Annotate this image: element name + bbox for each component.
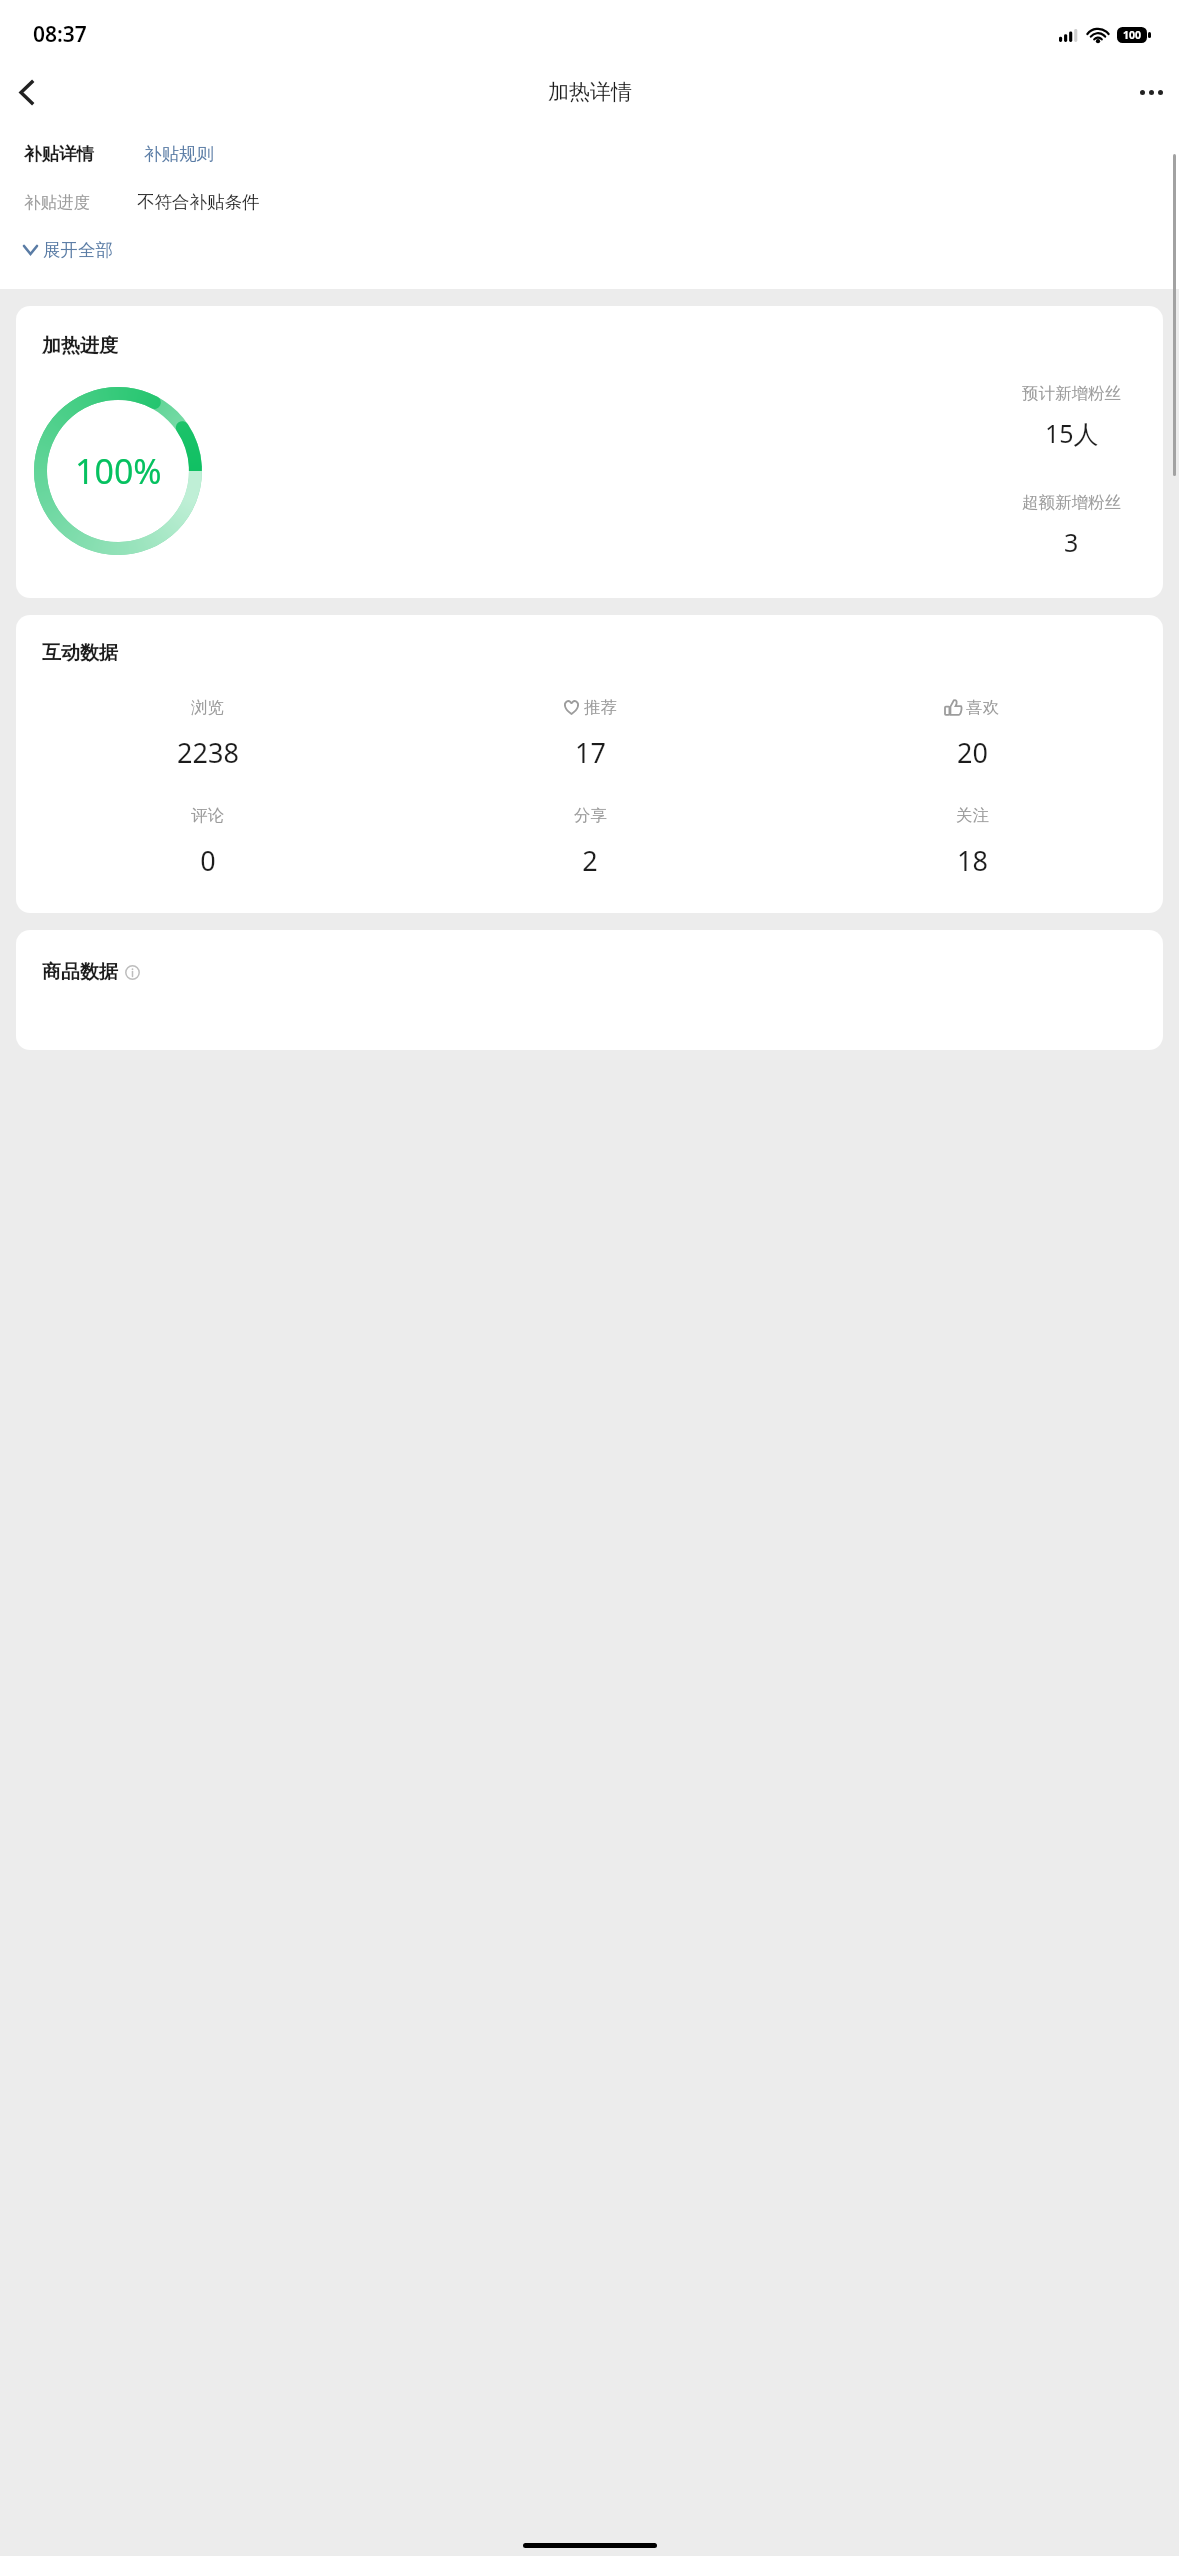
staticText: 不符合补贴条件 — [137, 191, 260, 213]
button[interactable]: 展开全部 — [24, 239, 113, 261]
button[interactable]: 喜欢 — [781, 697, 1163, 771]
staticText: 17 — [575, 734, 606, 771]
button[interactable]: 推荐 — [399, 697, 781, 771]
staticText: 08:37 — [33, 20, 87, 49]
staticText: 补贴进度 — [24, 192, 90, 213]
staticText: 互动数据 — [42, 641, 118, 665]
staticText: 0 — [200, 842, 216, 879]
staticText: 超额新增粉丝 — [1022, 492, 1121, 513]
staticText: 15人 — [1045, 416, 1099, 450]
staticText: 关注 — [956, 805, 989, 826]
staticText: 加热详情 — [548, 79, 632, 105]
staticText: 推荐 — [584, 697, 617, 718]
button[interactable]: 评论 — [16, 805, 399, 879]
staticText: 20 — [957, 734, 988, 771]
staticText: 评论 — [191, 805, 224, 826]
staticText: 100 — [1123, 28, 1142, 42]
staticText: 加热进度 — [42, 334, 118, 358]
button[interactable]: 浏览 — [16, 697, 399, 771]
staticText: 3 — [1064, 525, 1079, 559]
button[interactable]: 分享 — [399, 805, 781, 879]
staticText: 浏览 — [191, 697, 224, 718]
staticText: 喜欢 — [966, 697, 999, 718]
staticText: 补贴规则 — [144, 143, 214, 165]
staticText: 18 — [957, 842, 988, 879]
staticText: 展开全部 — [43, 239, 113, 261]
button[interactable]: More options — [1123, 64, 1179, 120]
button[interactable]: 商品数据 — [16, 930, 1163, 1050]
button[interactable]: 互动数据 — [16, 615, 1163, 913]
button[interactable]: 关注 — [781, 805, 1163, 879]
button[interactable]: 补贴规则 — [144, 143, 214, 165]
button[interactable]: 加热进度 — [16, 306, 1163, 598]
staticText: 100% — [75, 448, 162, 494]
staticText: 2238 — [177, 734, 239, 771]
staticText: 商品数据 — [42, 960, 118, 984]
staticText: 2 — [582, 842, 598, 879]
staticText: 分享 — [574, 805, 607, 826]
button[interactable]: Back — [0, 66, 52, 118]
staticText: 补贴详情 — [24, 143, 94, 165]
staticText: 预计新增粉丝 — [1022, 383, 1121, 404]
